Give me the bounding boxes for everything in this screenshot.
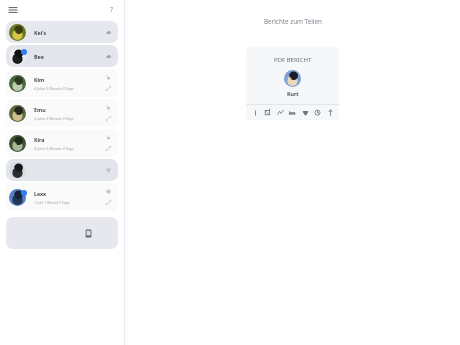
staticText: Lexx — [34, 190, 47, 197]
button[interactable]: Kim — [6, 69, 118, 97]
staticText: ? — [110, 5, 114, 15]
button[interactable]: Emu — [6, 99, 118, 127]
button[interactable]: Device — [6, 217, 118, 249]
button[interactable]: PDF BERICHT — [246, 47, 339, 120]
button[interactable]: Menu — [6, 3, 19, 16]
staticText: 1 Jahr 1 Monat 3 Tage — [34, 200, 70, 205]
button[interactable]: Info — [250, 107, 261, 118]
staticText: Berichte zum Teilen — [264, 17, 322, 26]
button[interactable]: Health — [300, 107, 311, 118]
staticText: PDF BERICHT — [274, 56, 312, 64]
button[interactable]: Chart — [275, 107, 286, 118]
button[interactable]: Time — [312, 107, 323, 118]
button[interactable]: Kira — [6, 129, 118, 157]
button[interactable]: Bed — [287, 107, 298, 118]
staticText: 4 Jahre 6 Monate 0 Tage — [34, 86, 74, 91]
staticText: 4 Jahre 6 Monate 0 Tage — [34, 146, 74, 151]
button[interactable]: Kei's — [6, 21, 118, 43]
staticText: 4 Jahre 6 Monate 0 Tage — [34, 116, 74, 121]
button[interactable]: Lexx — [6, 183, 118, 211]
staticText: Kira — [34, 136, 45, 143]
button[interactable]: Bee — [6, 45, 118, 67]
button[interactable] — [6, 159, 118, 181]
staticText: Emu — [34, 106, 46, 113]
staticText: Kei's — [34, 29, 47, 36]
staticText: Kurt — [287, 90, 299, 97]
button[interactable]: Help — [105, 3, 118, 16]
button[interactable]: Share — [325, 107, 336, 118]
staticText: Bee — [34, 53, 44, 60]
button[interactable]: Scan — [262, 107, 273, 118]
staticText: Kim — [34, 76, 45, 83]
